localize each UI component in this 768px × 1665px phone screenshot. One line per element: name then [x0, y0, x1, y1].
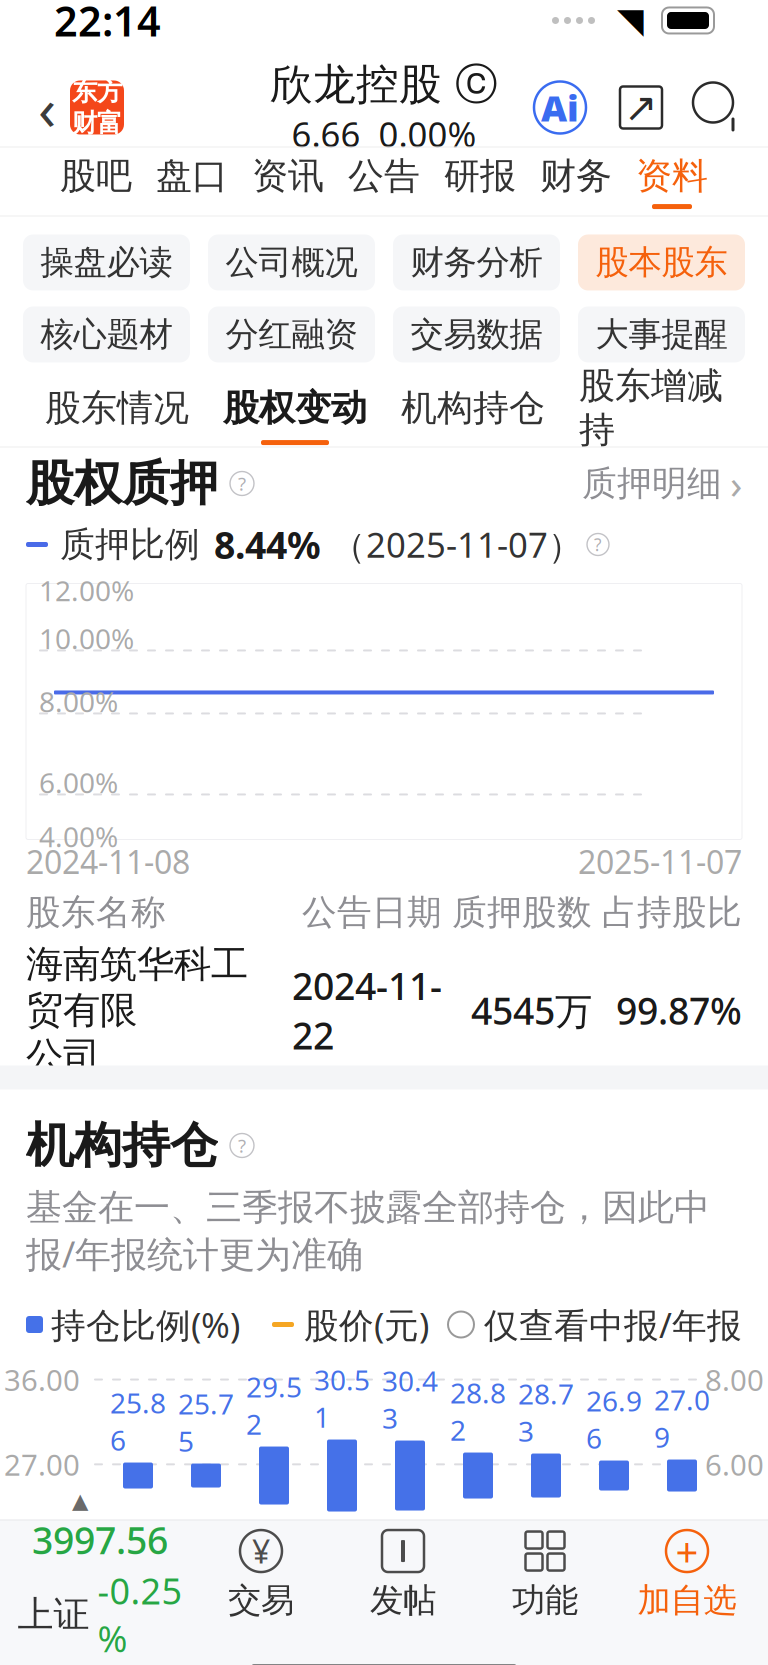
staticText: 4.00% — [39, 818, 118, 855]
button[interactable]: 股东情况 — [28, 386, 206, 445]
staticText: Ai — [541, 84, 579, 131]
staticText: 28.82 — [450, 1374, 506, 1448]
staticText: 股价(元) — [304, 1301, 429, 1347]
staticText: 操盘必读 — [40, 242, 172, 283]
staticText: 12.00% — [39, 572, 134, 609]
staticText: 36.00 — [4, 1360, 80, 1399]
button[interactable]: 财务分析 — [393, 234, 560, 290]
staticText: 资料 — [636, 154, 708, 198]
button[interactable]: 资料 — [624, 154, 720, 209]
button[interactable]: 股吧 — [48, 154, 144, 209]
button[interactable]: 搜索 — [692, 81, 744, 133]
staticText: 8.44% — [214, 520, 321, 569]
staticText: 28.73 — [518, 1375, 574, 1449]
staticText: 公司概况 — [225, 242, 357, 283]
staticText: 27.09 — [654, 1381, 710, 1455]
staticText: 上证 — [17, 1592, 89, 1636]
button[interactable]: 盘口 — [144, 154, 240, 209]
button[interactable]: 公告 — [336, 154, 432, 209]
staticText: 股东增减持 — [579, 364, 723, 452]
button[interactable]: 东方财富 — [70, 80, 124, 134]
button[interactable]: 仅查看中报/年报 — [448, 1301, 742, 1347]
staticText: › — [730, 457, 742, 510]
staticText: ? — [594, 533, 602, 556]
staticText: 29.52 — [246, 1368, 302, 1442]
button[interactable]: 资讯 — [240, 154, 336, 209]
staticText: -0.25% — [97, 1567, 182, 1662]
staticText: 30.51 — [314, 1361, 370, 1435]
button[interactable]: 功能 — [474, 1527, 616, 1623]
button[interactable]: 交易数据 — [393, 306, 560, 362]
staticText: 财务 — [540, 154, 612, 198]
staticText: 机构持仓 — [26, 1116, 218, 1175]
staticText: 2025-11-07 — [578, 840, 742, 883]
staticText: 25.75 — [178, 1385, 234, 1459]
staticText: 公告日期 — [302, 891, 442, 934]
staticText: 22:14 — [54, 0, 161, 48]
button[interactable]: 核心题材 — [23, 306, 190, 362]
staticText: 核心题材 — [40, 314, 172, 355]
staticText: ▲ — [72, 1489, 88, 1513]
button[interactable]: 返回 — [24, 69, 70, 145]
staticText: 持仓比例(%) — [51, 1301, 240, 1347]
staticText: 海南筑华科工贸有限 公司 — [26, 941, 248, 1079]
staticText: 交易 — [228, 1580, 294, 1621]
staticText: ¥ — [252, 1530, 270, 1572]
button[interactable]: 股东增减持 — [562, 364, 740, 467]
staticText: 股本股东 — [595, 242, 727, 283]
button[interactable]: 大事提醒 — [578, 306, 745, 362]
staticText: 研报 — [444, 154, 516, 198]
staticText: 99.87% — [616, 985, 742, 1035]
staticText: 3997.56 — [32, 1515, 168, 1565]
button[interactable]: 上证指数 — [10, 1520, 190, 1630]
button[interactable]: 股权变动 — [206, 386, 384, 445]
button[interactable]: 机构持仓 — [384, 386, 562, 445]
staticText: 基金在一、三季报不披露全部持仓，因此中报/年报统计更为准确 — [26, 1185, 710, 1277]
button[interactable]: 操盘必读 — [23, 234, 190, 290]
staticText: 10.00% — [39, 620, 134, 657]
staticText: 仅查看中报/年报 — [484, 1301, 742, 1347]
staticText: 26.96 — [586, 1382, 642, 1456]
staticText: 大事提醒 — [595, 314, 727, 355]
staticText: 分红融资 — [225, 314, 357, 355]
staticText: + — [675, 1524, 698, 1578]
staticText: 8.00% — [39, 683, 118, 720]
staticText: （2025-11-07） — [331, 521, 583, 568]
staticText: 股东情况 — [45, 386, 189, 430]
staticText: 股权变动 — [223, 386, 367, 430]
staticText: 加自选 — [637, 1580, 736, 1621]
button[interactable]: 研报 — [432, 154, 528, 209]
staticText: 交易数据 — [410, 314, 542, 355]
staticText: ? — [238, 471, 246, 496]
staticText: 2024-11-22 — [292, 961, 442, 1060]
staticText: 股东名称 — [26, 891, 166, 934]
button[interactable]: 股本股东 — [578, 234, 745, 290]
staticText: 30.43 — [382, 1362, 438, 1436]
button[interactable]: 发帖 — [332, 1527, 474, 1623]
staticText: ‹ — [38, 68, 56, 146]
staticText: 质押比例 — [60, 523, 200, 566]
button[interactable]: 分享 — [620, 86, 662, 128]
staticText: 4545万 — [471, 985, 592, 1035]
button[interactable]: ¥ — [190, 1527, 332, 1623]
staticText: 机构持仓 — [401, 386, 545, 430]
button[interactable]: 质押明细 — [582, 457, 742, 510]
staticText: 资讯 — [252, 154, 324, 198]
staticText: 质押明细 — [582, 462, 722, 505]
button[interactable]: + — [616, 1527, 758, 1623]
staticText: 财富 — [72, 107, 122, 139]
button[interactable]: 分红融资 — [208, 306, 375, 362]
staticText: 功能 — [512, 1580, 578, 1621]
staticText: 6.00% — [39, 764, 118, 801]
button[interactable]: 公司概况 — [208, 234, 375, 290]
button[interactable]: 财务 — [528, 154, 624, 209]
staticText: 6.66 0.00% — [291, 111, 476, 157]
staticText: 6.00 — [705, 1445, 764, 1484]
staticText: ↗ — [624, 85, 658, 130]
staticText: 欣龙控股 ⓒ — [270, 58, 498, 111]
staticText: 占持股比 — [602, 891, 742, 934]
staticText: 公告 — [348, 154, 420, 198]
staticText: ? — [238, 1133, 246, 1158]
button[interactable]: AI 助手 — [534, 81, 586, 133]
staticText: ◥ — [617, 1, 644, 40]
